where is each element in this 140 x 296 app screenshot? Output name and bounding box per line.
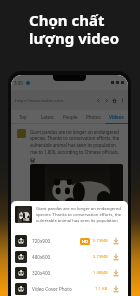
other: Forward (104, 98, 109, 103)
button[interactable]: 320x400 (11, 265, 128, 281)
button[interactable]: Videos (105, 110, 128, 123)
other: Home (112, 98, 117, 103)
staticText: 1.48MB (93, 270, 108, 276)
button[interactable]: Photos (82, 110, 105, 123)
other: Download (112, 285, 120, 293)
staticText: Top (19, 114, 27, 120)
staticText: 720x900 (32, 238, 51, 244)
button[interactable]: 480x600 (11, 249, 128, 265)
button[interactable]: Top (11, 110, 35, 123)
staticText: 480x600 (32, 254, 51, 260)
button[interactable]: Video Cover Photo (11, 281, 128, 296)
staticText: People (63, 114, 78, 120)
staticText: 1.1 KB (95, 286, 108, 292)
other: Download (112, 237, 120, 245)
staticText: HD (82, 239, 88, 244)
other: Download (112, 269, 120, 277)
staticText: 1:08 (23, 218, 30, 222)
staticText: Giant pandas are no longer an endangered… (36, 206, 125, 224)
staticText: https://www.twitter.com (15, 97, 96, 103)
staticText: Giant pandas are no longer an endangered… (30, 129, 124, 163)
button[interactable]: 720x900 (11, 233, 128, 249)
staticText: 3:30 (14, 80, 23, 86)
staticText: 320x400 (32, 270, 51, 276)
other: More options (120, 98, 125, 103)
staticText: Photos (86, 114, 101, 120)
staticText: Video Cover Photo (32, 286, 72, 292)
button[interactable]: People (59, 110, 82, 123)
staticText: 2.79MB (93, 254, 108, 260)
other: Download (112, 253, 120, 261)
staticText: Latest (41, 114, 54, 120)
staticText: Chọn chất lượng video (29, 10, 120, 49)
staticText: Videos (109, 114, 124, 120)
button[interactable]: Latest (35, 110, 59, 123)
staticText: 6.73MB (93, 238, 108, 244)
other: Back (96, 98, 101, 103)
